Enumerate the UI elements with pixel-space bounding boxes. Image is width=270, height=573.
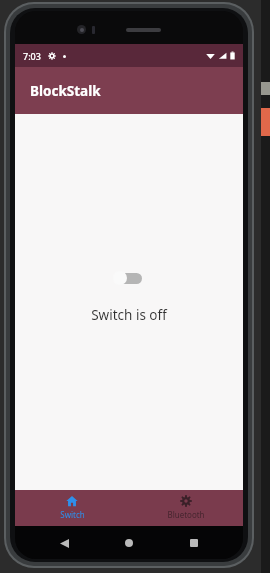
button[interactable]: Home: [120, 534, 138, 552]
button[interactable]: Switch: [15, 490, 129, 526]
staticText: Switch: [60, 509, 85, 520]
button[interactable]: Back: [55, 534, 73, 552]
button[interactable]: Toggle switch, off: [112, 268, 146, 288]
staticText: Switch is off: [91, 306, 167, 324]
staticText: 7:03: [23, 50, 41, 62]
button[interactable]: Bluetooth: [129, 490, 243, 526]
staticText: Bluetooth: [167, 509, 205, 520]
button[interactable]: Recent apps: [185, 534, 203, 552]
staticText: BlockStalk: [30, 82, 101, 100]
